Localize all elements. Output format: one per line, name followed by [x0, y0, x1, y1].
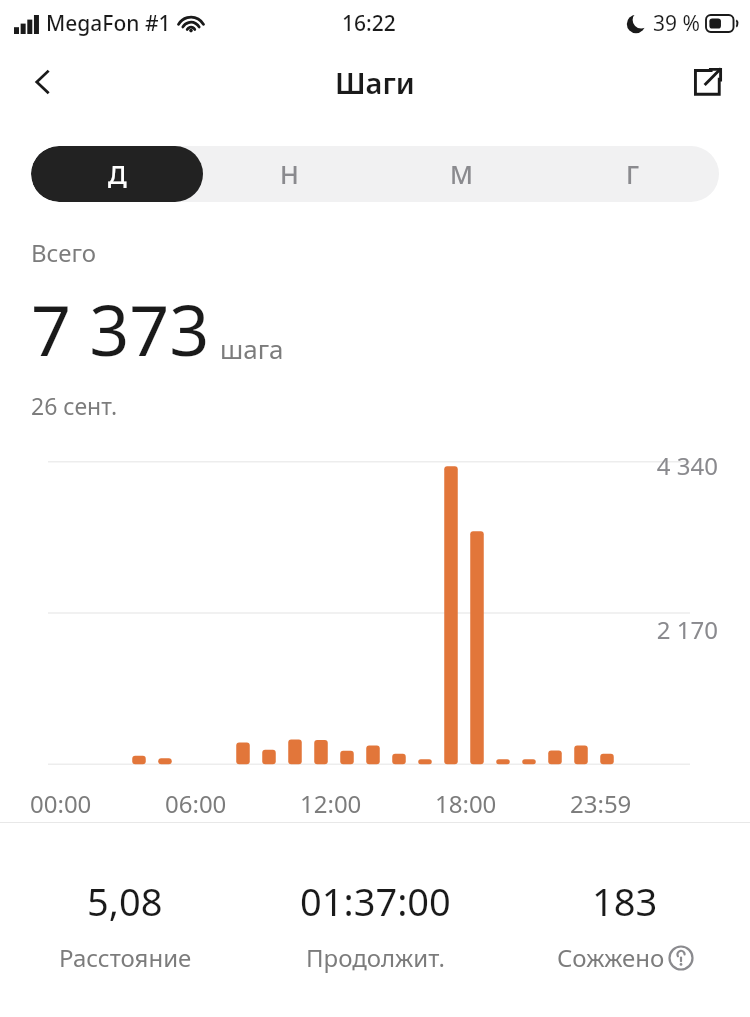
staticText: 26 сент.: [31, 390, 118, 421]
staticText: Г: [626, 157, 640, 191]
button[interactable]: Г: [547, 146, 719, 202]
staticText: Продолжит.: [306, 941, 445, 974]
staticText: М: [450, 157, 473, 191]
staticText: 01:37:00: [300, 875, 451, 927]
button[interactable]: Share: [682, 57, 732, 107]
staticText: 183: [592, 875, 658, 927]
button[interactable]: 5,08: [0, 871, 250, 978]
button[interactable]: Back: [18, 57, 68, 107]
staticText: Н: [280, 157, 299, 191]
staticText: шага: [220, 331, 284, 366]
staticText: 23:59: [570, 787, 632, 820]
staticText: MegaFon #1: [46, 9, 171, 38]
staticText: 39 %: [653, 9, 700, 38]
button[interactable]: Д: [31, 146, 203, 202]
staticText: Расстояние: [59, 941, 192, 974]
staticText: Д: [108, 157, 127, 191]
button[interactable]: 183: [500, 871, 750, 978]
staticText: 06:00: [165, 787, 227, 820]
staticText: 4 340: [0, 449, 718, 482]
button[interactable]: Н: [203, 146, 375, 202]
button[interactable]: 01:37:00: [250, 871, 500, 978]
staticText: 7 373: [31, 281, 210, 376]
staticText: Всего: [31, 236, 96, 269]
staticText: Шаги: [335, 63, 415, 102]
staticText: 2 170: [0, 613, 718, 646]
staticText: 5,08: [87, 875, 163, 927]
staticText: Сожжено: [557, 941, 665, 974]
staticText: 16:22: [342, 9, 396, 38]
button[interactable]: М: [375, 146, 547, 202]
staticText: 00:00: [30, 787, 92, 820]
staticText: 18:00: [435, 787, 497, 820]
staticText: 12:00: [300, 787, 362, 820]
